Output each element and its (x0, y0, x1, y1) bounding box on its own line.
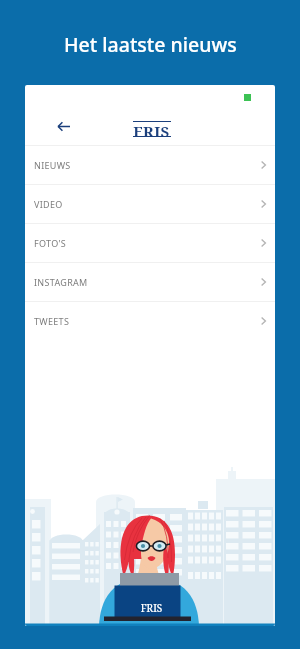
button[interactable]: INSTAGRAM (25, 263, 275, 301)
button[interactable]: TWEETS (25, 302, 275, 340)
staticText: FRIS (129, 601, 174, 615)
button[interactable]: Back (49, 112, 77, 140)
button[interactable]: FOTO'S (25, 224, 275, 262)
staticText: NIEUWS (34, 159, 71, 171)
button[interactable]: VIDEO (25, 185, 275, 223)
staticText: Het laatste nieuws (64, 31, 237, 58)
staticText: VIDEO (34, 198, 63, 210)
button[interactable]: NIEUWS (25, 146, 275, 184)
staticText: TWEETS (34, 315, 70, 327)
staticText: INSTAGRAM (34, 276, 88, 288)
staticText: FRIS (126, 121, 177, 141)
staticText: FOTO'S (34, 237, 67, 249)
